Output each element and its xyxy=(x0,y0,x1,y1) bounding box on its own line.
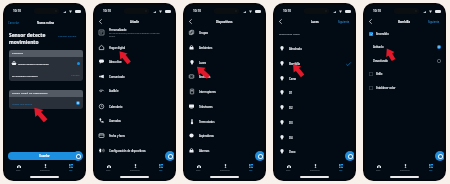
staticText: 10:10 xyxy=(13,9,21,13)
staticText: Más xyxy=(339,169,343,171)
button[interactable]: Alexa xyxy=(255,151,264,161)
button[interactable]: Termostatos xyxy=(185,114,264,129)
button[interactable]: Más xyxy=(148,161,174,174)
button[interactable]: Seleccionar todos xyxy=(279,32,300,35)
button[interactable]: Inicio xyxy=(275,161,302,174)
button[interactable]: Alexa xyxy=(165,151,174,161)
staticText: CUANDO xyxy=(12,52,24,55)
button[interactable]: Atrás xyxy=(97,18,104,25)
staticText: Inicio xyxy=(286,169,291,171)
button[interactable]: Siguiente xyxy=(428,20,440,23)
staticText: Nueva rutina xyxy=(37,21,55,25)
staticText: Luces xyxy=(199,61,207,65)
staticText: Almohada xyxy=(289,47,351,51)
staticText: D2 xyxy=(289,106,351,110)
staticText: 10:10 xyxy=(373,9,381,13)
button[interactable]: Atrás xyxy=(277,18,284,25)
button[interactable]: Deco xyxy=(275,144,354,159)
staticText: Añadir una acción xyxy=(12,102,33,105)
button[interactable]: Grupos xyxy=(185,25,264,40)
button[interactable]: Cambiar nombre xyxy=(58,35,77,38)
button[interactable]: Encendido xyxy=(365,27,444,40)
button[interactable]: Desactivado xyxy=(365,54,444,67)
button[interactable]: Interruptores xyxy=(185,84,264,99)
staticText: Inicio xyxy=(16,169,21,171)
button[interactable]: Guardar xyxy=(8,152,80,160)
button[interactable]: Cancelar xyxy=(8,21,19,25)
button[interactable]: Dispositivos xyxy=(392,161,418,174)
button[interactable]: Inicio xyxy=(95,161,122,174)
button[interactable]: Dispositivos xyxy=(212,161,238,174)
staticText: Grupos xyxy=(199,31,209,35)
staticText: Inicio xyxy=(376,169,381,171)
button[interactable]: Atrás xyxy=(187,18,194,25)
button[interactable]: Siguiente xyxy=(338,20,350,23)
button[interactable]: Comunicado xyxy=(95,69,174,84)
button[interactable]: Inicio xyxy=(5,161,32,174)
button[interactable]: Bombilla xyxy=(275,56,354,71)
button[interactable]: Inicio xyxy=(365,161,392,174)
button[interactable]: Cama xyxy=(275,71,354,86)
button[interactable]: Audible xyxy=(95,84,174,98)
button[interactable]: Aspiradoras xyxy=(185,128,264,143)
staticText: Ambientes xyxy=(199,46,213,50)
button[interactable]: D4 xyxy=(275,130,354,145)
staticText: Audible xyxy=(109,89,119,93)
button[interactable]: Más xyxy=(328,161,354,174)
button[interactable]: Más xyxy=(58,161,84,174)
button[interactable]: Alarmas xyxy=(185,143,264,158)
button[interactable]: Televisores xyxy=(185,99,264,114)
button[interactable]: Hogar digital xyxy=(95,40,174,55)
staticText: Termostatos xyxy=(199,120,215,124)
button[interactable]: Establecer color xyxy=(365,81,444,95)
button[interactable]: Configuración de dispositivos xyxy=(95,143,174,158)
staticText: Bombilla xyxy=(398,20,411,24)
staticText: Activado xyxy=(373,45,437,49)
staticText: Enchufes xyxy=(199,75,211,79)
staticText: En cualquier momento xyxy=(12,74,38,77)
button[interactable]: Inicio xyxy=(185,161,212,174)
button[interactable]: Alexa xyxy=(73,151,83,161)
button[interactable]: Alexa xyxy=(345,151,354,161)
button[interactable]: Dispositivos xyxy=(302,161,328,174)
button[interactable]: Más xyxy=(238,161,264,174)
staticText: D4 xyxy=(289,136,351,140)
button[interactable]: Sensor detecta movimiento xyxy=(12,57,80,69)
staticText: Más xyxy=(159,169,163,171)
staticText: Encendido xyxy=(376,32,441,36)
staticText: Inicio xyxy=(196,169,201,171)
button[interactable]: En cualquier momento xyxy=(12,69,80,81)
staticText: Luces xyxy=(311,20,319,24)
button[interactable]: Atrás xyxy=(367,18,374,25)
staticText: Más xyxy=(429,169,433,171)
button[interactable]: Personalizado xyxy=(95,26,174,39)
button[interactable]: D2 xyxy=(275,100,354,115)
button[interactable]: Brillo xyxy=(365,67,444,81)
button[interactable]: Enchufes xyxy=(185,69,264,84)
staticText: Dispositivos xyxy=(216,20,233,24)
button[interactable]: Alexa dice xyxy=(95,54,174,69)
staticText: D3 xyxy=(289,121,351,125)
button[interactable]: Dispositivos xyxy=(122,161,148,174)
button[interactable]: Dispositivos xyxy=(32,161,58,174)
staticText: Sensor detecta movimiento xyxy=(18,62,49,65)
button[interactable]: Fecha y hora xyxy=(95,128,174,143)
staticText: Dispositivos xyxy=(130,169,140,171)
button[interactable]: Añadir una acción xyxy=(12,97,80,109)
staticText: Sensor detecte movimiento xyxy=(9,32,46,45)
staticText: Alarmas xyxy=(199,149,210,153)
button[interactable]: Llamadas xyxy=(95,113,174,128)
staticText: D1 xyxy=(289,91,351,95)
button[interactable]: Activado xyxy=(365,40,444,53)
button[interactable]: Ambientes xyxy=(185,40,264,55)
staticText: 10:10 xyxy=(283,9,291,13)
button[interactable]: Calendario xyxy=(95,99,174,114)
staticText: Dispositivos xyxy=(400,169,410,171)
button[interactable]: D3 xyxy=(275,115,354,130)
button[interactable]: D1 xyxy=(275,85,354,100)
button[interactable]: Almohada xyxy=(275,41,354,56)
button[interactable]: Luces xyxy=(185,55,264,70)
staticText: Establecer color xyxy=(376,86,441,90)
button[interactable]: Alexa xyxy=(435,151,444,161)
button[interactable]: Más xyxy=(418,161,444,174)
